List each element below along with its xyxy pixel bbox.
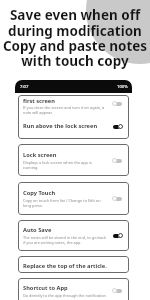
staticText: Lock screen [23,151,57,159]
staticText: Save even when off during modification C… [0,6,150,69]
staticText: first screen [23,97,55,105]
staticText: Auto Save [23,226,52,234]
staticText: The notes will be stored in the end, to … [23,235,106,245]
staticText: Shortcut to App [23,284,68,292]
button[interactable]: Replace the top of the article. [18,256,129,273]
button[interactable]: Lock screen [18,144,129,176]
staticText: If you close the screen and turn it on a… [23,105,105,115]
button[interactable]: Switch off [112,287,123,294]
staticText: Run above the lock screen [23,122,98,130]
button[interactable]: Switch off [112,195,123,202]
staticText: 7:07 [20,84,29,90]
staticText: Copy Touch [23,189,56,197]
staticText: 100% [117,84,128,90]
button[interactable]: first screen [18,95,129,139]
button[interactable]: Switch off [112,157,123,164]
staticText: Go directly to the app through the notif… [23,293,106,298]
button[interactable]: Switch on [112,123,123,130]
staticText: Replace the top of the article. [23,262,107,270]
button[interactable]: Switch off [112,100,123,107]
button[interactable]: Copy Touch [18,182,129,215]
staticText: Displays a lock screen when the app is r… [23,160,92,170]
button[interactable]: Shortcut to App [18,278,129,300]
button[interactable]: Switch on [112,232,123,239]
staticText: Copy on touch from list / Change to Edit… [23,198,101,208]
button[interactable]: Auto Save [18,220,129,251]
